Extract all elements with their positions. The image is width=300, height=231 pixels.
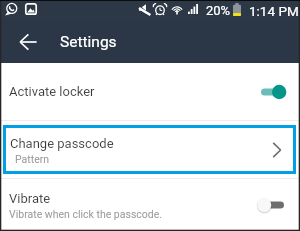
button[interactable]: Back <box>9 23 47 61</box>
staticText: Vibrate when click the passcode. <box>9 208 163 220</box>
staticText: Change passcode <box>10 136 114 151</box>
staticText: Activate locker <box>9 84 95 99</box>
staticText: 20% <box>206 3 231 18</box>
staticText: Vibrate <box>9 191 51 206</box>
staticText: Settings <box>60 33 117 51</box>
button[interactable]: Vibrate <box>0 179 300 231</box>
button[interactable]: Activate locker <box>0 63 300 119</box>
button[interactable]: Change passcode <box>6 128 293 171</box>
staticText: 1:14 PM <box>249 3 299 19</box>
staticText: Pattern <box>15 153 50 165</box>
